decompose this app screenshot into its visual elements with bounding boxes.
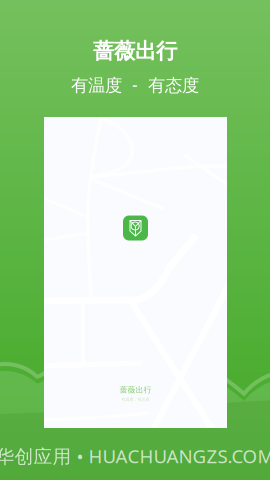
staticText: 蔷薇出行	[119, 385, 151, 395]
staticText: 有温度 - 有态度	[71, 73, 199, 96]
staticText: 有温度 - 有态度	[121, 397, 149, 402]
staticText: 华创应用 • HUACHUANGZS.COM	[0, 444, 270, 468]
staticText: 蔷薇出行	[93, 38, 177, 64]
